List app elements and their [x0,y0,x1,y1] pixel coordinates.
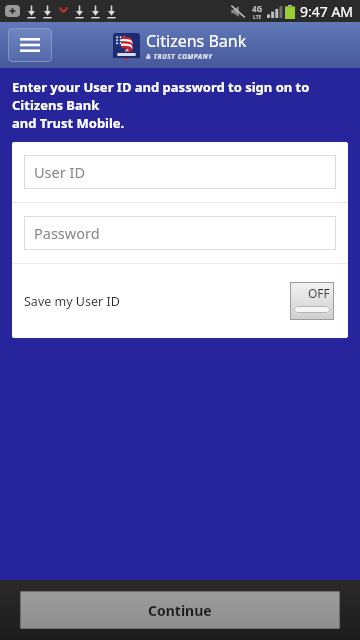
staticText: OFF [308,285,330,301]
button[interactable]: Save my User ID, off [290,282,334,320]
button[interactable]: User ID [24,155,336,189]
staticText: Continue [148,601,212,620]
staticText: & TRUST COMPANY [146,52,213,61]
staticText: User ID [34,162,85,182]
staticText: LTE [253,14,262,21]
staticText: 4G [252,3,263,14]
button[interactable]: Password [24,216,336,250]
staticText: Password [34,223,100,243]
staticText: Enter your User ID and password to sign … [12,78,348,132]
button[interactable]: Save my User ID [12,264,348,338]
staticText: Citizens Bank [146,30,247,52]
staticText: Save my User ID [24,293,120,310]
staticText: 9:47 AM [300,2,354,21]
button[interactable]: Menu [8,28,52,62]
button[interactable]: Continue [20,591,340,629]
